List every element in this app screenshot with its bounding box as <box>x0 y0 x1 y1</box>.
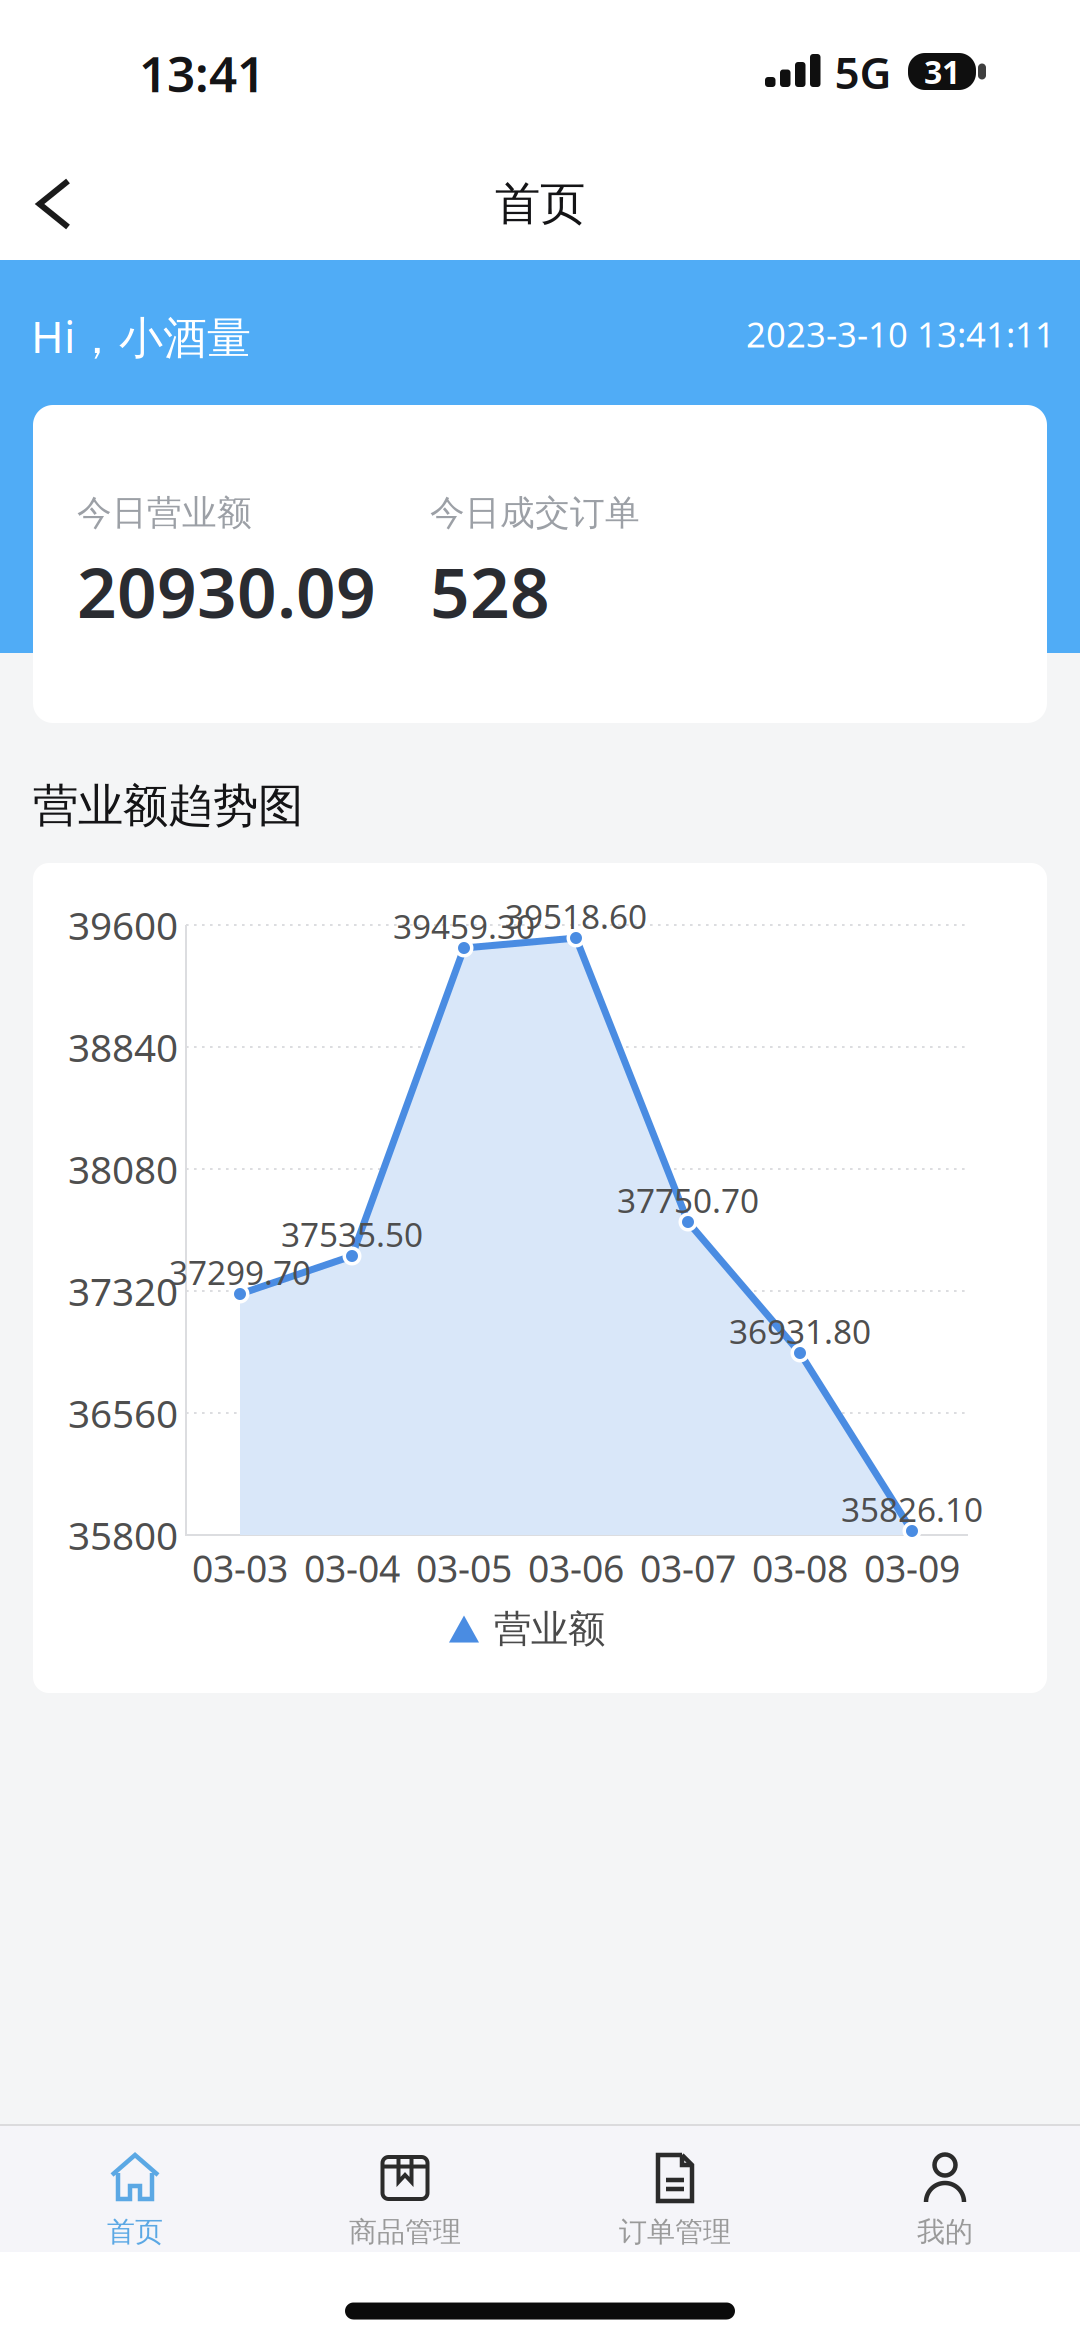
staticText: 5G <box>834 43 891 101</box>
staticText: 39518.60 <box>505 894 647 938</box>
staticText: 528 <box>430 545 550 637</box>
staticText: 37299.70 <box>169 1250 311 1294</box>
staticText: 订单管理 <box>619 2215 731 2249</box>
staticText: 03-04 <box>304 1543 400 1593</box>
staticText: 13:41 <box>139 40 265 106</box>
staticText: Hi，小酒量 <box>31 307 251 365</box>
staticText: 今日成交订单 <box>430 492 640 534</box>
staticText: 36560 <box>68 1387 178 1439</box>
staticText: 今日营业额 <box>77 492 252 534</box>
staticText: 37535.50 <box>281 1212 423 1256</box>
button[interactable]: 商品管理 <box>270 2127 540 2257</box>
staticText: 37750.70 <box>617 1178 759 1222</box>
staticText: 39459.30 <box>393 904 535 948</box>
staticText: 03-08 <box>752 1543 848 1593</box>
staticText: 03-03 <box>192 1543 288 1593</box>
staticText: 营业额 <box>494 1606 605 1652</box>
staticText: 首页 <box>495 176 585 232</box>
button[interactable]: Back <box>23 174 83 234</box>
staticText: 39600 <box>68 899 178 951</box>
staticText: 36931.80 <box>729 1309 871 1353</box>
staticText: 35826.10 <box>841 1487 983 1531</box>
staticText: 35800 <box>68 1509 178 1561</box>
staticText: 我的 <box>917 2215 973 2249</box>
staticText: 03-05 <box>416 1543 512 1593</box>
staticText: 03-07 <box>640 1543 736 1593</box>
button[interactable]: 我的 <box>810 2127 1080 2257</box>
staticText: 20930.09 <box>77 545 376 637</box>
button[interactable]: 订单管理 <box>540 2127 810 2257</box>
staticText: 营业额趋势图 <box>33 778 303 834</box>
staticText: 37320 <box>68 1265 178 1317</box>
staticText: 商品管理 <box>349 2215 461 2249</box>
staticText: 03-06 <box>528 1543 624 1593</box>
staticText: 2023-3-10 13:41:11 <box>746 311 1055 357</box>
staticText: 首页 <box>107 2215 163 2249</box>
staticText: 38840 <box>68 1021 178 1073</box>
button[interactable]: 营业额 <box>449 1606 605 1652</box>
staticText: 31 <box>924 50 960 93</box>
staticText: 03-09 <box>864 1543 960 1593</box>
staticText: 38080 <box>68 1143 178 1195</box>
button[interactable]: 首页 <box>0 2127 270 2257</box>
